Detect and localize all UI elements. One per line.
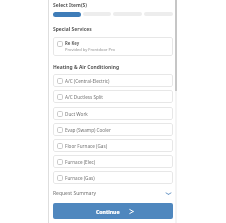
staticText: Special Services (53, 26, 92, 33)
staticText: Provided by Frontdoor Pro (65, 47, 116, 53)
button[interactable]: Duct Work (53, 107, 173, 120)
staticText: Floor Furnace (Gas) (65, 143, 108, 149)
staticText: Request Summary (53, 190, 97, 197)
staticText: Continue (96, 208, 120, 215)
staticText: Select Item(S) (53, 2, 87, 9)
staticText: Heating & Air Conditioning (53, 64, 120, 71)
other: Continue (129, 209, 134, 214)
button[interactable]: Furnace (Elec) (53, 155, 173, 168)
button[interactable]: Request Summary (53, 189, 173, 198)
other: Expand request summary (166, 190, 171, 197)
button[interactable]: A/C (Central-Electric) (53, 74, 173, 87)
button[interactable]: Floor Furnace (Gas) (53, 139, 173, 152)
staticText: Re Key (65, 40, 80, 46)
button[interactable]: A/C Ductless Split (53, 90, 173, 103)
staticText: Duct Work (65, 111, 88, 117)
staticText: Evap (Swamp) Cooler (65, 127, 111, 133)
button[interactable]: Furnace (Gas) (53, 171, 173, 184)
button[interactable]: Evap (Swamp) Cooler (53, 123, 173, 136)
staticText: A/C Ductless Split (65, 94, 103, 100)
staticText: A/C (Central-Electric) (65, 78, 110, 84)
button[interactable]: Continue (53, 203, 173, 219)
button[interactable]: Re Key (53, 37, 173, 56)
staticText: Furnace (Gas) (65, 175, 95, 181)
staticText: Furnace (Elec) (65, 159, 96, 165)
